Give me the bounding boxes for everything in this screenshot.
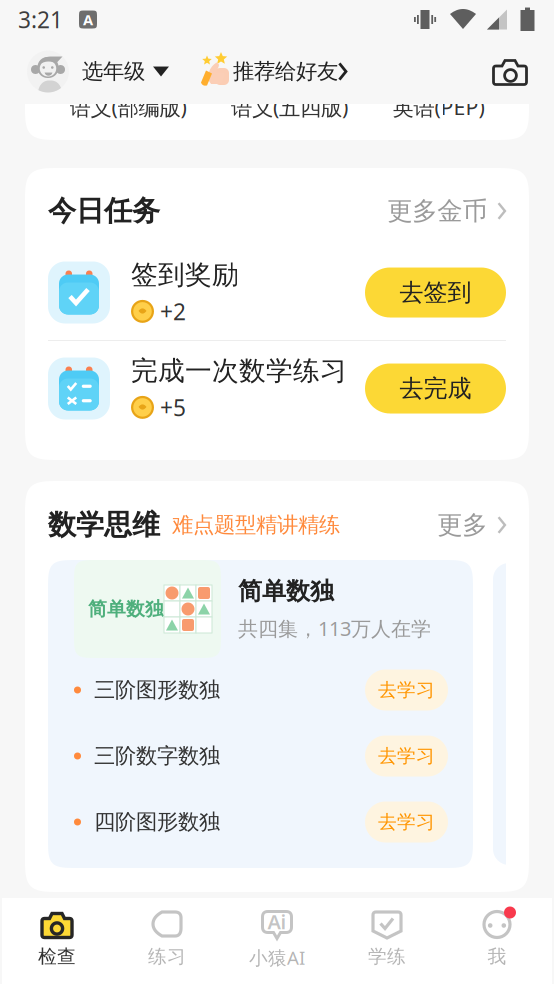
staticText: 今日任务 [48,194,160,228]
staticText: 推荐给好友 [233,58,338,85]
staticText: 小猿AI [249,945,305,970]
staticText: 三阶数字数独 [94,743,220,769]
staticText: 我 [487,945,506,968]
button[interactable]: 练习 [112,898,222,984]
button[interactable]: 去学习 [365,735,448,776]
staticText: 签到奖励 [131,259,239,291]
staticText: 简单数独 [238,576,334,606]
staticText: +2 [160,296,186,326]
staticText: 更多 [437,509,487,540]
staticText: 简单数独 [88,597,164,620]
staticText: 去学习 [378,678,435,701]
button[interactable]: 更多 [437,509,506,540]
button[interactable]: 语义(部编版) [69,93,186,121]
staticText: 更多金币 [387,195,487,226]
staticText: 去学习 [378,810,435,833]
staticText: 语义(部编版) [69,93,186,121]
staticText: 难点题型精讲精练 [172,512,340,538]
staticText: A [83,10,93,29]
button[interactable]: 去学习 [365,669,448,710]
button[interactable]: 英语(PEP) [392,93,484,121]
staticText: 共四集，113万人在学 [238,615,431,642]
button[interactable]: 学练 [332,898,442,984]
staticText: 四阶图形数独 [94,809,220,835]
staticText: +5 [160,392,186,422]
staticText: 选年级 [82,58,145,85]
staticText: 英语(PEP) [392,93,484,121]
button[interactable]: 语义(五四版) [231,93,348,121]
button[interactable]: 去完成 [365,363,506,413]
staticText: 语义(五四版) [231,93,348,121]
staticText: 去学习 [378,744,435,767]
staticText: 学练 [368,945,406,968]
staticText: 三阶图形数独 [94,677,220,703]
staticText: 数学思维 [48,508,160,542]
button[interactable]: 检查 [2,898,112,984]
staticText: 检查 [38,945,76,968]
button[interactable]: 更多金币 [387,195,506,226]
button[interactable]: 去学习 [365,801,448,842]
button[interactable]: 推荐给好友 [199,54,369,88]
staticText: 完成一次数学练习 [131,355,347,387]
button[interactable]: Ai [222,898,332,984]
staticText: 去签到 [399,278,471,307]
staticText: 练习 [148,945,186,968]
button[interactable]: 我 [442,898,552,984]
staticText: 3:21 [18,4,63,34]
button[interactable]: 去签到 [365,267,506,317]
staticText: Ai [267,908,286,935]
button[interactable]: 拍照搜题 [491,55,529,88]
staticText: 去完成 [399,374,471,403]
button[interactable]: 选年级 [27,50,185,92]
